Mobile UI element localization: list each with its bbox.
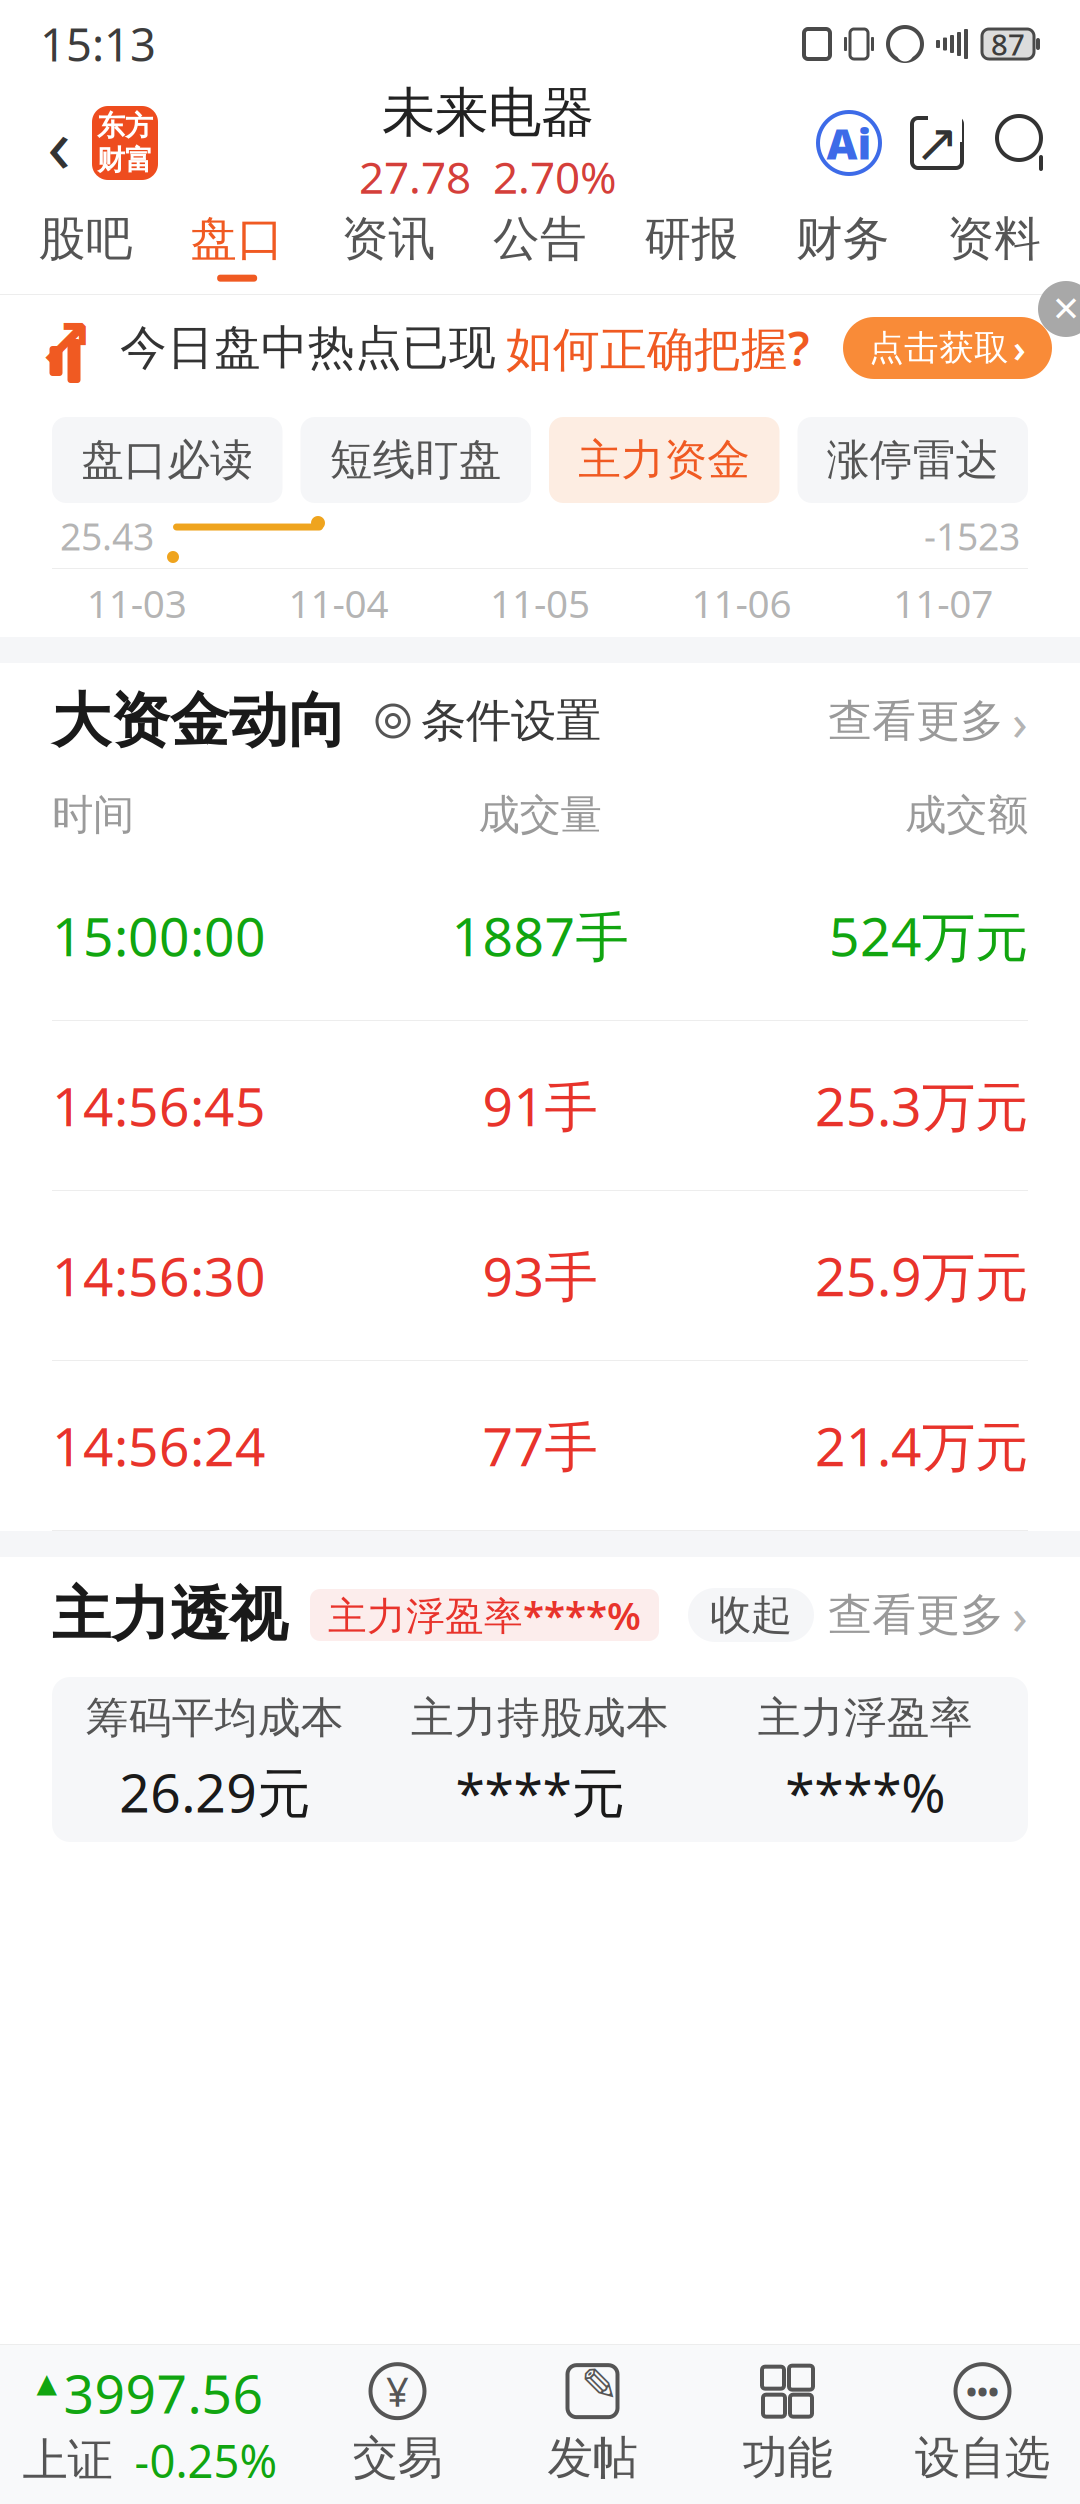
staticText: 11-05 — [490, 577, 590, 629]
staticText: 查看更多 — [828, 1588, 1004, 1642]
staticText: 功能 — [742, 2430, 832, 2486]
staticText: 东方 — [97, 109, 153, 143]
staticText: 主力透视 — [52, 1579, 288, 1651]
staticText: 91手 — [482, 1070, 597, 1141]
staticText: 2.70% — [493, 147, 617, 206]
staticText: ****% — [785, 1756, 945, 1827]
staticText: › — [1012, 1581, 1028, 1649]
staticText: 77手 — [482, 1410, 597, 1481]
staticText: 研报 — [644, 210, 738, 268]
staticText: 大资金动向 — [52, 685, 347, 757]
button[interactable]: 条件设置 — [347, 693, 601, 749]
staticText: 时间 — [52, 790, 134, 840]
staticText: ✕ — [1051, 289, 1080, 329]
button[interactable]: 涨停雷达 — [797, 417, 1028, 503]
button[interactable]: 研报 — [616, 198, 767, 294]
staticText: 财富 — [97, 143, 153, 177]
staticText: 11-07 — [893, 577, 993, 629]
staticText: 盘口 — [190, 210, 284, 268]
button[interactable]: 15:00:00 — [0, 851, 1080, 1020]
staticText: 未来电器 — [382, 80, 594, 145]
staticText: 主力浮盈率 — [758, 1692, 973, 1744]
staticText: 条件设置 — [421, 693, 601, 749]
button[interactable]: 公告 — [464, 198, 616, 294]
button[interactable]: ••• — [885, 2344, 1080, 2504]
staticText: 点击获取 — [869, 327, 1009, 369]
staticText: 27.78 — [359, 147, 471, 206]
staticText: 财务 — [796, 210, 890, 268]
staticText: ▲ — [36, 2368, 57, 2398]
staticText: 25.3万元 — [815, 1070, 1028, 1141]
staticText: 14:56:45 — [52, 1070, 266, 1141]
staticText: -0.25% — [134, 2430, 277, 2490]
button[interactable]: 东方财富 — [92, 106, 158, 180]
button[interactable]: 分享 — [908, 112, 966, 174]
staticText: ↗ — [914, 113, 959, 173]
staticText: ••• — [966, 2372, 999, 2411]
button[interactable]: 盘口必读 — [52, 417, 282, 503]
staticText: 14:56:30 — [52, 1240, 266, 1311]
staticText: 收起 — [710, 1590, 792, 1640]
button[interactable]: ¥ — [300, 2344, 495, 2504]
button[interactable]: 主力资金 — [549, 417, 779, 503]
button[interactable]: 短线盯盘 — [300, 417, 531, 503]
staticText: 设自选 — [915, 2430, 1050, 2486]
staticText: 25.43 — [60, 511, 154, 561]
staticText: ↗ — [36, 305, 94, 383]
button[interactable]: 关闭广告 — [1038, 295, 1080, 337]
staticText: ✎ — [580, 2359, 618, 2411]
staticText: 25.9万元 — [815, 1240, 1028, 1311]
staticText: 如何正确把握? — [506, 317, 810, 379]
staticText: 524万元 — [829, 900, 1028, 971]
staticText: ¥ — [386, 2365, 409, 2418]
staticText: 查看更多 — [828, 694, 1004, 748]
button[interactable]: 股吧 — [10, 198, 161, 294]
button[interactable]: 盘口 — [161, 198, 313, 294]
staticText: 今日盘中热点已现 — [120, 319, 496, 377]
staticText: 交易 — [352, 2430, 442, 2486]
button[interactable]: 查看更多 — [814, 1581, 1028, 1649]
staticText: 26.29元 — [119, 1756, 310, 1827]
staticText: 主力持股成本 — [411, 1692, 669, 1744]
button[interactable]: 14:56:45 — [0, 1021, 1080, 1190]
button[interactable]: 查看更多 — [814, 687, 1028, 755]
staticText: Ai — [826, 115, 871, 171]
staticText: 股吧 — [39, 210, 133, 268]
button[interactable]: ✎ — [495, 2344, 690, 2504]
button[interactable]: 财务 — [767, 198, 918, 294]
button[interactable]: 14:56:30 — [0, 1191, 1080, 1360]
staticText: 主力资金 — [578, 434, 750, 486]
staticText: 3997.56 — [63, 2357, 263, 2428]
staticText: 成交量 — [478, 790, 601, 840]
staticText: 15:00:00 — [52, 900, 266, 971]
button[interactable]: ▲ — [0, 2344, 300, 2504]
staticText: 主力浮盈率****% — [328, 1589, 641, 1641]
staticText: 14:56:24 — [52, 1410, 266, 1481]
staticText: 资讯 — [342, 210, 436, 268]
button[interactable]: 未来电器 — [359, 80, 617, 206]
staticText: 11-06 — [692, 577, 792, 629]
staticText: 盘口必读 — [81, 434, 253, 486]
staticText: 涨停雷达 — [827, 434, 999, 486]
staticText: 短线盯盘 — [330, 434, 502, 486]
staticText: 87 — [991, 24, 1025, 63]
button[interactable]: 功能 — [690, 2344, 885, 2504]
staticText: › — [1012, 687, 1028, 755]
staticText: 资料 — [947, 210, 1041, 268]
staticText: 93手 — [482, 1240, 597, 1311]
button[interactable]: 资讯 — [313, 198, 464, 294]
staticText: 筹码平均成本 — [86, 1692, 344, 1744]
staticText: 11-03 — [87, 577, 187, 629]
button[interactable]: 14:56:24 — [0, 1361, 1080, 1530]
staticText: 发帖 — [547, 2430, 637, 2486]
button[interactable]: 返回 — [26, 95, 92, 191]
staticText: 11-04 — [288, 577, 388, 629]
staticText: 1887手 — [451, 900, 628, 971]
staticText: 公告 — [493, 210, 587, 268]
button[interactable]: ↗ — [0, 295, 1080, 401]
button[interactable]: AI 助手 — [818, 112, 880, 174]
staticText: ****元 — [455, 1756, 624, 1827]
button[interactable]: 搜索 — [994, 112, 1054, 174]
button[interactable]: 收起 — [688, 1588, 814, 1642]
button[interactable]: 资料 — [919, 198, 1070, 294]
